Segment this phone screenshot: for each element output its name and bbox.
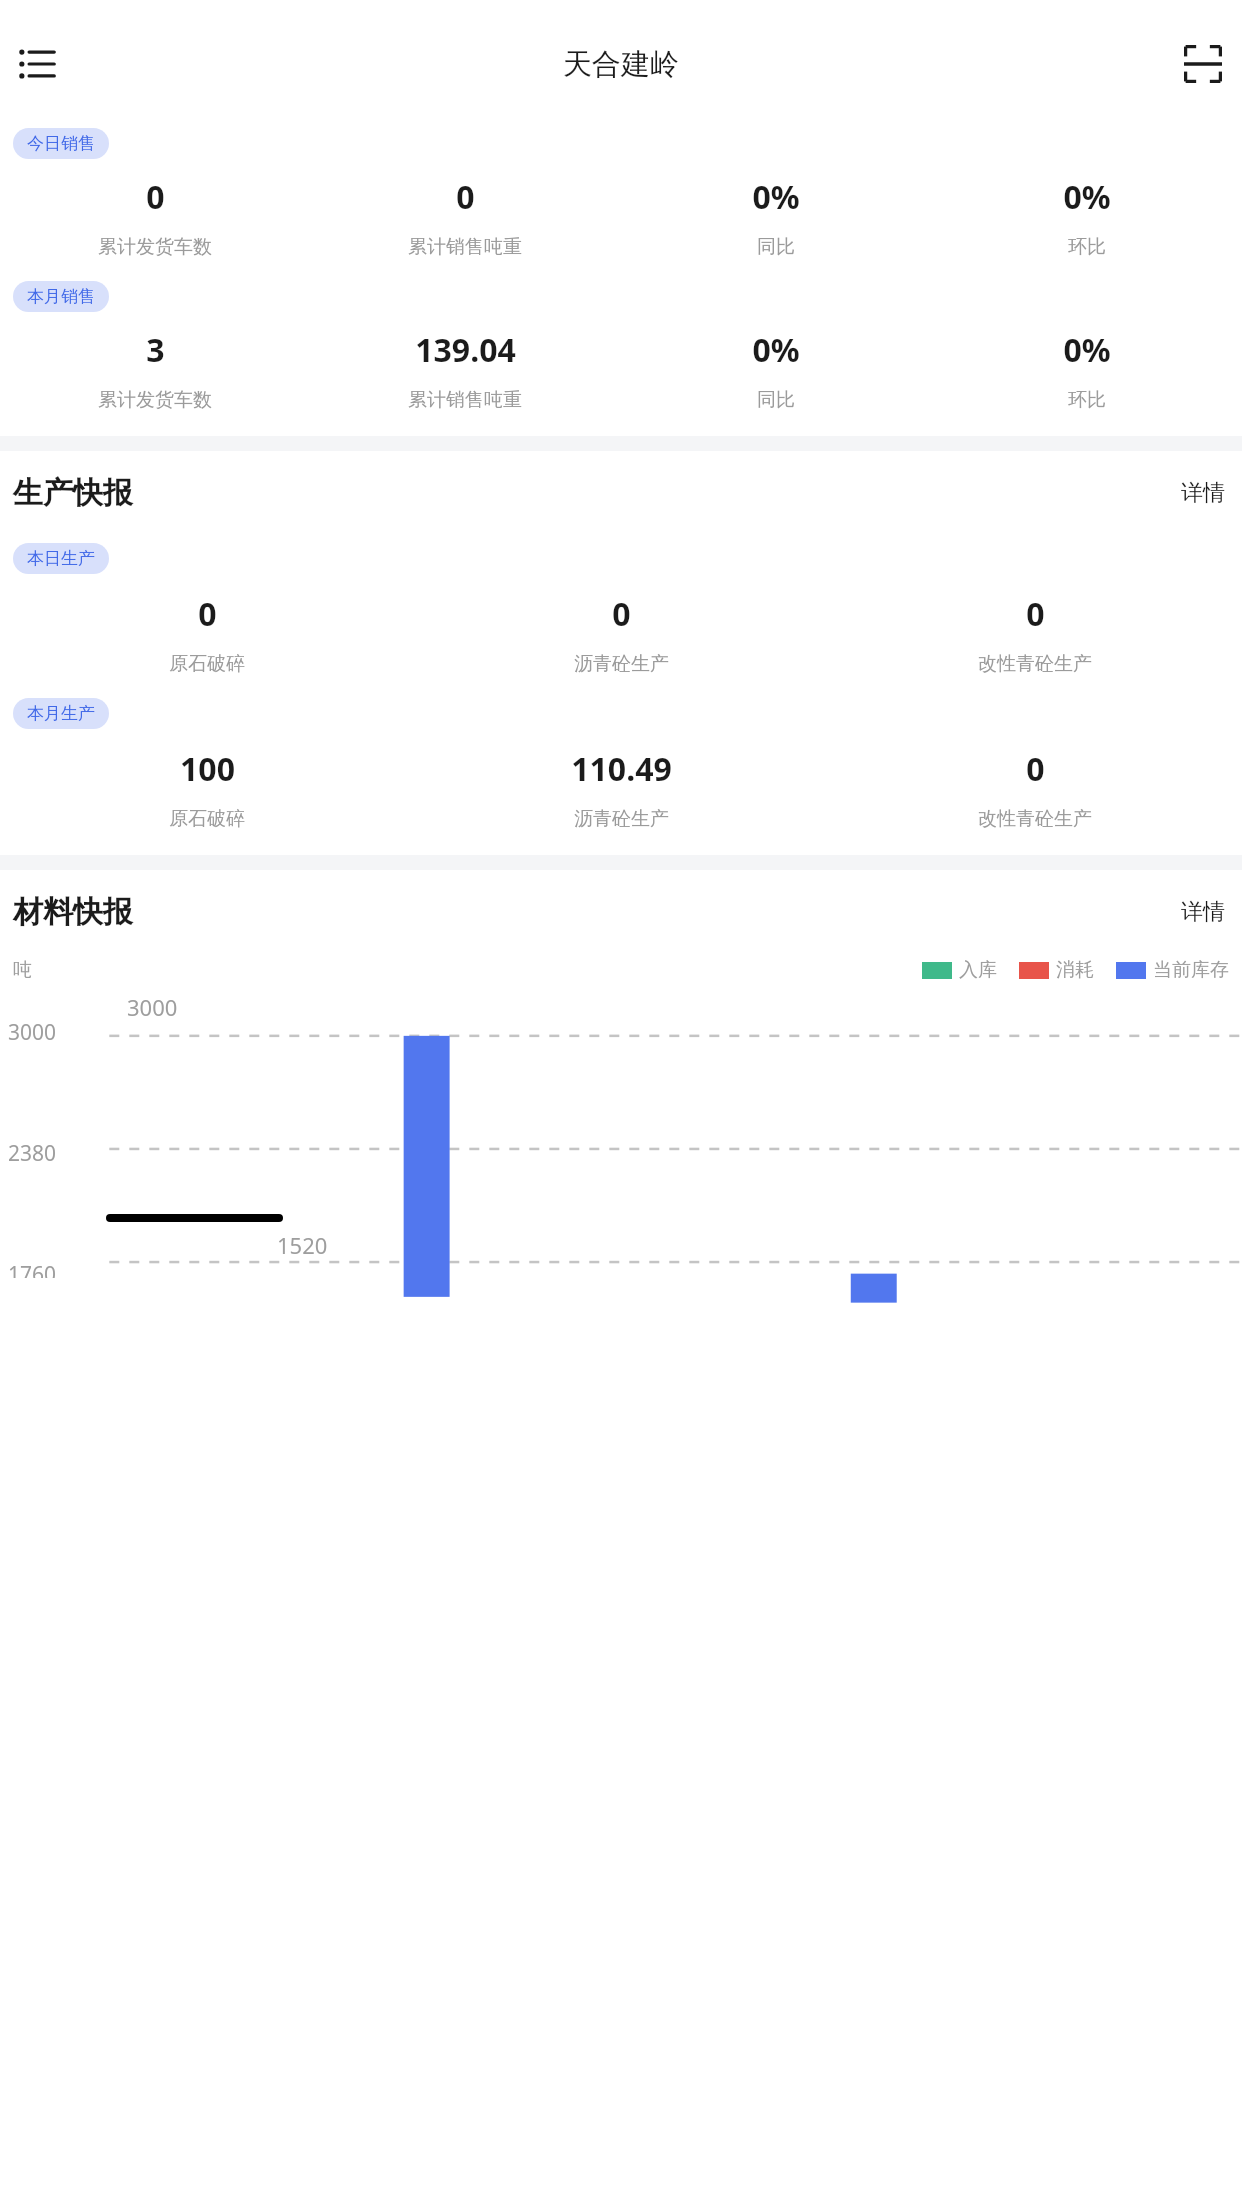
staticText: 3 <box>146 328 165 372</box>
button[interactable]: 0 <box>414 592 828 676</box>
button[interactable]: 当前库存 <box>1116 958 1229 982</box>
staticText: 本月生产 <box>27 703 95 724</box>
button[interactable]: 0 <box>0 592 414 676</box>
staticText: 0 <box>1026 747 1045 791</box>
staticText: 详情 <box>1181 898 1225 926</box>
staticText: 本月销售 <box>27 286 95 307</box>
button[interactable]: Menu <box>6 33 68 95</box>
staticText: 0% <box>1063 175 1111 219</box>
staticText: 0 <box>1026 592 1045 636</box>
staticText: 累计发货车数 <box>98 235 212 259</box>
button[interactable]: 0% <box>620 328 931 412</box>
staticText: 2380 <box>8 1139 57 1168</box>
staticText: 110.49 <box>571 747 672 791</box>
staticText: 1760 <box>8 1260 57 1278</box>
staticText: 改性青砼生产 <box>978 652 1092 676</box>
button[interactable]: 今日销售 <box>13 128 109 159</box>
button[interactable]: 入库 <box>922 958 997 982</box>
staticText: 0 <box>198 592 217 636</box>
staticText: 原石破碎 <box>169 652 245 676</box>
button[interactable]: 本月生产 <box>13 698 109 729</box>
staticText: 同比 <box>757 388 795 412</box>
staticText: 3000 <box>8 1018 57 1047</box>
button[interactable]: 本月销售 <box>13 281 109 312</box>
staticText: 本日生产 <box>27 548 95 569</box>
staticText: 0% <box>752 175 800 219</box>
staticText: 详情 <box>1181 479 1225 507</box>
button[interactable]: 110.49 <box>414 747 828 831</box>
button[interactable]: 详情 <box>1177 473 1229 513</box>
staticText: 累计发货车数 <box>98 388 212 412</box>
staticText: 改性青砼生产 <box>978 807 1092 831</box>
staticText: 0 <box>146 175 165 219</box>
staticText: 0 <box>612 592 631 636</box>
button[interactable]: 0 <box>0 175 310 259</box>
button[interactable]: 0% <box>620 175 931 259</box>
staticText: 环比 <box>1068 235 1106 259</box>
button[interactable]: 详情 <box>1177 892 1229 932</box>
staticText: 累计销售吨重 <box>408 235 522 259</box>
staticText: 生产快报 <box>13 474 133 512</box>
staticText: 吨 <box>13 958 32 982</box>
staticText: 材料快报 <box>13 893 133 931</box>
staticText: 消耗 <box>1056 958 1094 982</box>
staticText: 环比 <box>1068 388 1106 412</box>
staticText: 累计销售吨重 <box>408 388 522 412</box>
button[interactable]: Scan <box>1172 33 1234 95</box>
staticText: 3000 <box>127 992 178 1022</box>
button[interactable]: 100 <box>0 747 414 831</box>
button[interactable]: 本日生产 <box>13 543 109 574</box>
staticText: 天合建岭 <box>563 46 679 83</box>
staticText: 0% <box>1063 328 1111 372</box>
staticText: 100 <box>180 747 235 791</box>
staticText: 今日销售 <box>27 133 95 154</box>
button[interactable]: 3 <box>0 328 310 412</box>
button[interactable]: 139.04 <box>310 328 620 412</box>
staticText: 当前库存 <box>1153 958 1229 982</box>
staticText: 沥青砼生产 <box>574 652 669 676</box>
button[interactable]: 0 <box>828 592 1242 676</box>
staticText: 入库 <box>959 958 997 982</box>
staticText: 同比 <box>757 235 795 259</box>
staticText: 139.04 <box>415 328 516 372</box>
button[interactable]: 0% <box>931 175 1242 259</box>
staticText: 原石破碎 <box>169 807 245 831</box>
staticText: 1520 <box>277 1230 328 1260</box>
button[interactable]: 0 <box>828 747 1242 831</box>
staticText: 沥青砼生产 <box>574 807 669 831</box>
button[interactable]: 0% <box>931 328 1242 412</box>
staticText: 0% <box>752 328 800 372</box>
button[interactable]: 0 <box>310 175 620 259</box>
staticText: 0 <box>456 175 475 219</box>
button[interactable]: 消耗 <box>1019 958 1094 982</box>
